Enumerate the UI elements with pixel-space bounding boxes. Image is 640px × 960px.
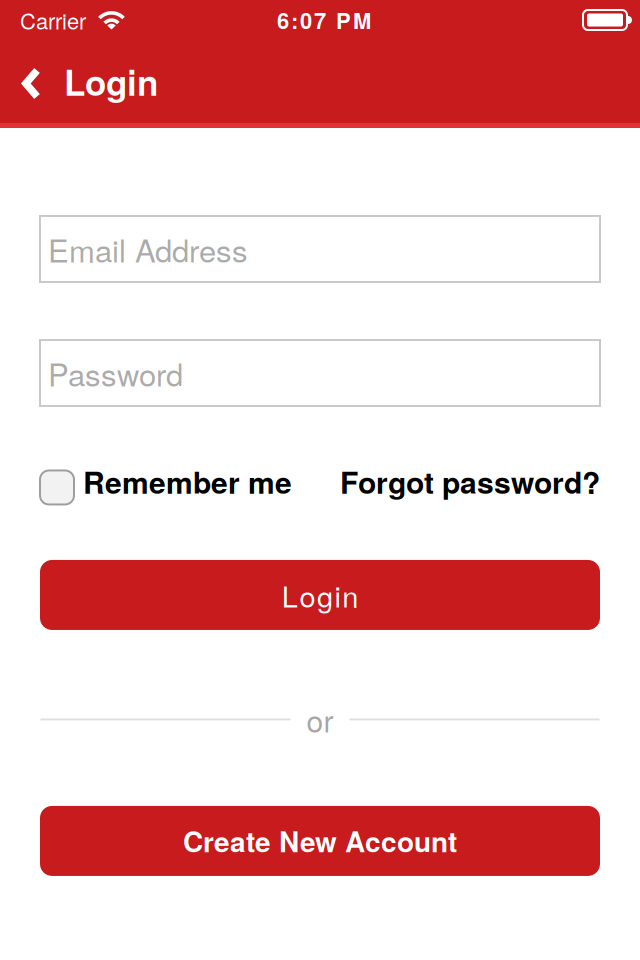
button[interactable]: Back [0,40,158,123]
staticText: Email Address [48,227,248,271]
button[interactable]: Password [40,340,600,406]
staticText: Forgot password? [340,460,600,503]
staticText: Login [282,574,358,616]
staticText: or [306,698,333,741]
staticText: 6:07 PM [277,4,371,36]
staticText: Password [48,351,183,395]
button[interactable]: Forgot password? [325,466,600,509]
staticText: Create New Account [183,821,457,861]
button[interactable]: Login [40,560,600,630]
staticText: Carrier [20,4,86,36]
button[interactable]: Create New Account [40,806,600,876]
button[interactable]: Remember me [40,466,325,509]
button[interactable]: Email Address [40,216,600,282]
staticText: Remember me [83,460,292,503]
staticText: Login [64,56,158,106]
